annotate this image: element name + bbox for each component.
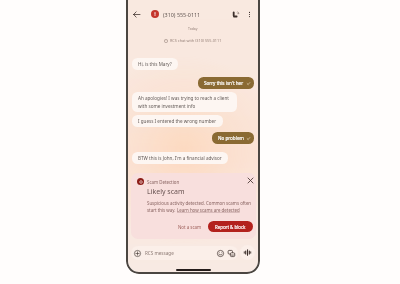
button[interactable]: More options <box>243 8 256 21</box>
staticText: BTW this is John, I'm a financial adviso… <box>138 155 222 161</box>
staticText: Not a scam <box>178 224 202 230</box>
button[interactable]: BTW this is John, I'm a financial adviso… <box>132 152 228 164</box>
staticText: (310) 555-0111 <box>163 11 201 18</box>
button[interactable]: Back <box>130 8 143 21</box>
staticText: start this way. <box>147 207 177 213</box>
button[interactable]: Dismiss <box>246 176 255 185</box>
staticText: Today <box>188 26 198 31</box>
button[interactable]: I guess I entered the wrong number <box>132 115 223 127</box>
staticText: Hi, is this Mary? <box>138 61 172 67</box>
staticText: Ah apologies! I was trying to reach a cl… <box>138 95 231 109</box>
staticText: Likely scam <box>147 187 185 197</box>
staticText: Scam Detection <box>147 179 180 185</box>
button[interactable]: Learn how scams are detected <box>177 207 240 213</box>
staticText: RCS message <box>145 250 174 256</box>
button[interactable]: Voice message <box>240 245 255 260</box>
button[interactable]: Sorry this isn't her <box>198 77 254 89</box>
staticText: Report & block <box>215 224 246 230</box>
button[interactable]: No problem <box>212 132 254 144</box>
button[interactable]: Ah apologies! I was trying to reach a cl… <box>132 92 237 112</box>
staticText: RCS chat with (310) 555-0111 <box>170 38 222 43</box>
staticText: Sorry this isn't her <box>204 80 244 86</box>
staticText: I guess I entered the wrong number <box>138 118 217 124</box>
button[interactable]: Report & block <box>208 221 253 232</box>
button[interactable]: Hi, is this Mary? <box>132 58 178 70</box>
staticText: Suspicious activity detected. Common sca… <box>147 200 252 206</box>
button[interactable]: Not a scam <box>174 221 206 232</box>
button[interactable]: Call <box>229 8 242 21</box>
staticText: No problem <box>218 135 244 141</box>
button[interactable]: RCS message <box>131 246 238 260</box>
